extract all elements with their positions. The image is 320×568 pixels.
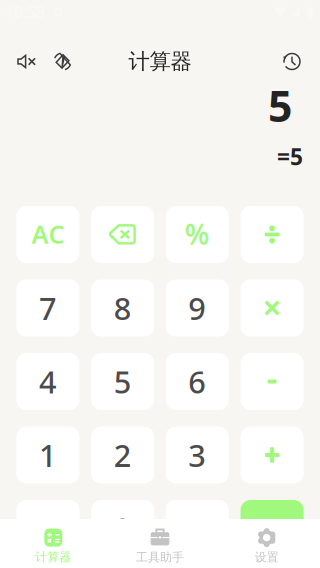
button[interactable]: 1 bbox=[16, 426, 79, 483]
button[interactable]: 7 bbox=[16, 279, 79, 336]
button[interactable]: 5 bbox=[91, 353, 154, 410]
staticText: 6 bbox=[188, 361, 206, 402]
button[interactable]: History bbox=[277, 46, 307, 76]
staticText: AC bbox=[31, 217, 64, 251]
staticText: 0 bbox=[114, 508, 132, 549]
staticText: % bbox=[185, 215, 210, 253]
button[interactable]: 工具助手 bbox=[107, 519, 213, 568]
staticText: 8 bbox=[114, 288, 132, 328]
staticText: 3 bbox=[188, 435, 206, 475]
button[interactable]: 0 bbox=[91, 500, 154, 557]
staticText: =5 bbox=[277, 141, 303, 171]
button[interactable]: 4 bbox=[16, 353, 79, 410]
button[interactable]: 设置 bbox=[213, 519, 320, 568]
staticText: 9 bbox=[188, 288, 206, 328]
staticText: 4 bbox=[39, 361, 57, 402]
button[interactable]: Plus minus bbox=[16, 500, 79, 557]
button[interactable]: 2 bbox=[91, 426, 154, 483]
button[interactable]: % bbox=[166, 206, 229, 263]
staticText: 5 bbox=[114, 361, 132, 402]
button[interactable]: . bbox=[166, 500, 229, 557]
staticText: 工具助手 bbox=[136, 550, 184, 565]
button[interactable]: 9 bbox=[166, 279, 229, 336]
staticText: 计算器 bbox=[128, 48, 191, 75]
button[interactable]: Vibration off bbox=[47, 46, 77, 76]
button[interactable]: 6 bbox=[166, 353, 229, 410]
button[interactable]: Multiply bbox=[240, 279, 304, 336]
staticText: 7 bbox=[39, 288, 57, 328]
staticText: 计算器 bbox=[35, 550, 71, 564]
button[interactable]: Backspace bbox=[91, 206, 154, 263]
button[interactable]: Mute bbox=[11, 46, 41, 76]
button[interactable]: Minus bbox=[240, 353, 304, 410]
button[interactable]: Equals bbox=[240, 500, 304, 557]
staticText: 设置 bbox=[255, 550, 279, 565]
staticText: 1 bbox=[39, 435, 57, 475]
button[interactable]: AC bbox=[16, 206, 79, 263]
button[interactable]: 8 bbox=[91, 279, 154, 336]
button[interactable]: 3 bbox=[166, 426, 229, 483]
staticText: 5 bbox=[268, 77, 292, 134]
button[interactable]: 计算器 bbox=[0, 519, 107, 568]
button[interactable]: Plus bbox=[240, 426, 304, 483]
staticText: 2 bbox=[114, 435, 132, 475]
button[interactable]: Divide bbox=[240, 206, 304, 263]
